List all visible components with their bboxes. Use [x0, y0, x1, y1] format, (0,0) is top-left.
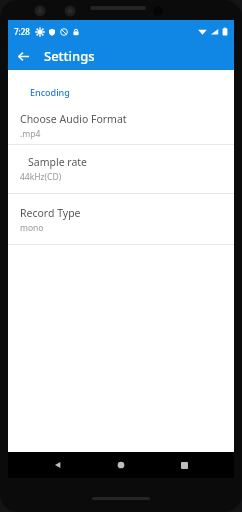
button[interactable]: Back — [45, 452, 71, 478]
staticText: Choose Audio Format — [20, 112, 127, 126]
button[interactable]: Home — [108, 452, 134, 478]
staticText: mono — [20, 222, 44, 234]
staticText: Sample rate — [28, 155, 88, 169]
staticText: .mp4 — [20, 128, 41, 140]
staticText: Encoding — [30, 86, 70, 98]
button[interactable]: Record Type — [8, 202, 234, 238]
staticText: 7:28 — [14, 26, 30, 37]
button[interactable]: Navigate up — [12, 45, 34, 67]
staticText: 44kHz(CD) — [20, 171, 62, 183]
button[interactable]: Choose Audio Format — [8, 108, 234, 144]
staticText: Record Type — [20, 206, 81, 220]
staticText: Settings — [44, 47, 95, 65]
button[interactable]: Sample rate — [8, 151, 234, 187]
button[interactable]: Recent apps — [171, 452, 197, 478]
